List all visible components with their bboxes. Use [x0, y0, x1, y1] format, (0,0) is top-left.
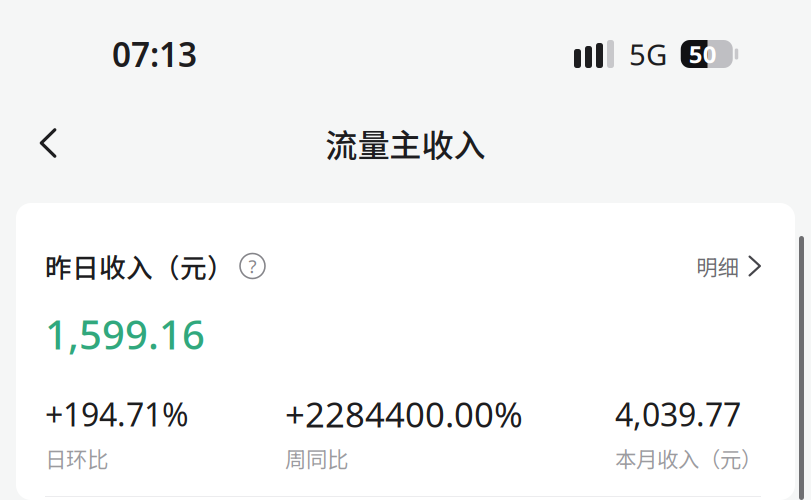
- staticText: 流量主收入: [325, 120, 485, 166]
- staticText: 5G: [629, 34, 667, 73]
- staticText: 50: [689, 38, 717, 70]
- staticText: 日环比: [45, 443, 108, 473]
- staticText: 昨日收入（元）: [45, 247, 234, 285]
- staticText: +2284400.00%: [285, 391, 523, 437]
- staticText: +194.71%: [45, 393, 189, 435]
- staticText: 明细: [696, 251, 738, 281]
- staticText: 本月收入（元）: [615, 443, 762, 473]
- staticText: 1,599.16: [45, 307, 205, 360]
- button[interactable]: Back: [20, 115, 76, 171]
- staticText: 07:13: [112, 32, 197, 76]
- staticText: ?: [248, 254, 256, 278]
- staticText: 周同比: [285, 443, 348, 473]
- staticText: 4,039.77: [615, 393, 741, 435]
- button[interactable]: 明细: [696, 251, 761, 281]
